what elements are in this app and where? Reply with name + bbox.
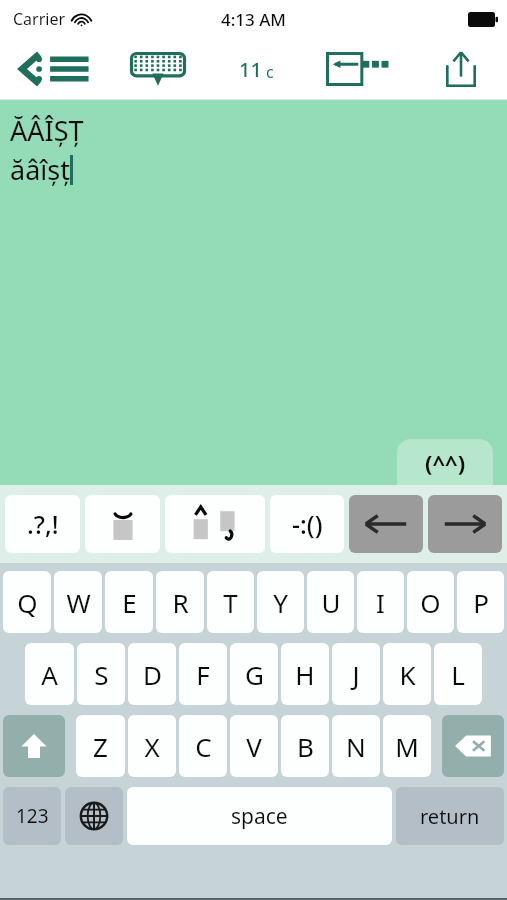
button[interactable] [165,495,265,553]
button[interactable]: return [396,787,504,845]
staticText: T [223,585,238,620]
button[interactable]: U [307,571,354,633]
button[interactable] [85,495,160,553]
staticText: -:() [292,507,323,541]
button[interactable]: L [434,643,482,705]
button[interactable]: space [127,787,392,845]
staticText: c [266,61,274,83]
staticText: H [295,657,315,692]
staticText: S [94,657,109,692]
staticText: 123 [16,803,49,829]
staticText: R [172,585,189,620]
staticText: (^^) [425,447,466,477]
staticText: L [451,657,465,692]
button[interactable]: Share [414,38,507,100]
staticText: U [321,585,341,620]
staticText: 11 [239,56,262,83]
staticText: Q [17,585,38,620]
staticText: B [297,729,314,764]
button[interactable]: Q [3,571,51,633]
staticText: K [399,657,416,692]
staticText: I [376,585,385,620]
button[interactable]: R [156,571,204,633]
staticText: ăâîșț [10,151,70,188]
button[interactable]: N [332,715,380,777]
button[interactable]: Insert text [304,38,414,100]
button[interactable]: Hide keyboard [108,38,208,100]
staticText: V [246,729,262,764]
button[interactable]: E [105,571,153,633]
button[interactable]: (^^) [397,439,493,485]
button[interactable]: G [230,643,278,705]
button[interactable]: I [357,571,404,633]
button[interactable]: V [230,715,278,777]
staticText: Carrier [13,8,66,30]
staticText: Y [273,585,288,620]
button[interactable]: 123 [3,787,61,845]
button[interactable]: B [281,715,329,777]
staticText: .?,! [27,507,59,541]
staticText: ĂÂÎȘȚ [10,112,84,149]
staticText: D [143,657,162,692]
button[interactable]: Shift [3,715,65,777]
staticText: G [245,657,264,692]
button[interactable]: Change keyboard language [65,787,123,845]
button[interactable]: W [54,571,102,633]
button[interactable]: H [281,643,329,705]
button[interactable]: A [25,643,74,705]
button[interactable]: M [383,715,431,777]
button[interactable]: 11 [208,38,304,100]
button[interactable]: X [128,715,176,777]
staticText: J [352,657,360,692]
staticText: P [473,585,489,620]
button[interactable]: S [77,643,125,705]
button[interactable]: O [407,571,454,633]
staticText: 4:13 AM [221,8,286,31]
button[interactable]: -:() [270,495,344,553]
button[interactable]: J [332,643,380,705]
button[interactable]: Move cursor right [428,495,502,553]
staticText: M [395,729,419,764]
button[interactable]: P [457,571,504,633]
staticText: W [66,585,91,620]
button[interactable]: F [179,643,227,705]
button[interactable]: D [128,643,176,705]
staticText: return [420,803,480,830]
staticText: O [420,585,441,620]
button[interactable]: Move cursor left [349,495,423,553]
button[interactable]: Z [76,715,125,777]
staticText: E [122,585,137,620]
button[interactable]: C [179,715,227,777]
button[interactable]: Back to list [0,38,108,100]
staticText: N [346,729,366,764]
button[interactable]: .?,! [5,495,80,553]
button[interactable]: T [207,571,254,633]
staticText: Z [93,729,108,764]
button[interactable]: Backspace [442,715,504,777]
button[interactable]: K [383,643,431,705]
staticText: X [144,729,160,764]
staticText: F [196,657,210,692]
staticText: A [41,657,58,692]
staticText: space [231,802,288,831]
staticText: C [195,729,212,764]
button[interactable]: Y [257,571,304,633]
